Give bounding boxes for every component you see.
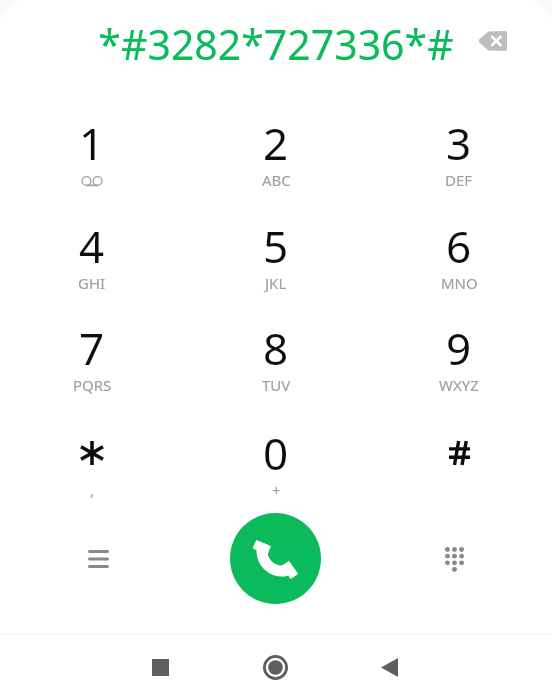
button[interactable]: Call — [230, 513, 321, 604]
button[interactable]: 3 — [399, 107, 519, 210]
staticText: 4 — [79, 216, 105, 276]
staticText: 3 — [446, 113, 472, 173]
staticText: 8 — [263, 318, 289, 378]
staticText: PQRS — [73, 375, 112, 395]
button[interactable]: 9 — [399, 312, 519, 415]
staticText: 2 — [263, 113, 289, 173]
staticText: , — [90, 480, 95, 500]
button[interactable]: 5 — [216, 210, 336, 313]
button[interactable]: 6 — [399, 210, 519, 313]
button[interactable]: 2 — [216, 107, 336, 210]
staticText: GHI — [78, 273, 106, 293]
button[interactable]: 7 — [32, 312, 152, 415]
staticText: *#3282*727336*# — [98, 16, 454, 72]
button[interactable]: Back — [367, 645, 411, 689]
button[interactable]: Home — [253, 645, 297, 689]
button[interactable]: Backspace — [468, 17, 516, 65]
staticText: DEF — [445, 170, 473, 190]
staticText: 6 — [446, 216, 472, 276]
staticText: TUV — [262, 375, 291, 395]
button[interactable] — [399, 417, 519, 520]
staticText: + — [272, 480, 281, 500]
staticText: 9 — [446, 318, 472, 378]
staticText: WXYZ — [439, 375, 479, 395]
button[interactable]: 8 — [216, 312, 336, 415]
staticText: 7 — [79, 318, 105, 378]
button[interactable]: 1 — [32, 107, 152, 210]
button[interactable]: 0 — [216, 417, 336, 520]
staticText: JKL — [265, 273, 287, 293]
button[interactable]: Menu — [70, 531, 126, 587]
staticText: ABC — [262, 170, 291, 190]
staticText: 5 — [263, 216, 289, 276]
button[interactable]: 4 — [32, 210, 152, 313]
staticText: 0 — [263, 423, 289, 483]
button[interactable]: Recent apps — [138, 645, 182, 689]
button[interactable]: Dialpad — [426, 531, 482, 587]
staticText: MNO — [441, 273, 478, 293]
button[interactable]: , — [32, 417, 152, 520]
staticText: 1 — [79, 113, 105, 173]
